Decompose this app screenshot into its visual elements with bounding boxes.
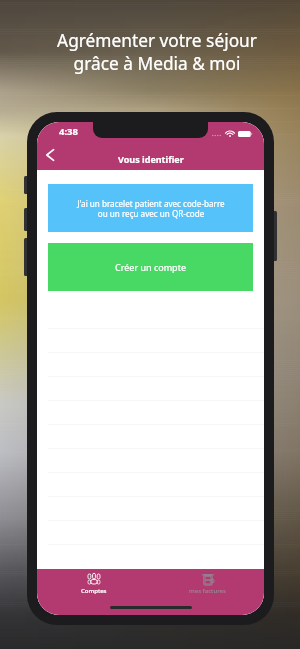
staticText: Vous identifier bbox=[118, 153, 184, 165]
button[interactable]: J'ai un bracelet patient avec code-barre… bbox=[48, 184, 253, 232]
button[interactable]: mes factures bbox=[150, 569, 264, 599]
staticText: Comptes bbox=[81, 587, 107, 595]
button[interactable]: Retour bbox=[37, 139, 61, 170]
staticText: J'ai un bracelet patient avec code-barre… bbox=[77, 198, 225, 219]
button[interactable]: Comptes bbox=[37, 569, 150, 599]
button[interactable]: Créer un compte bbox=[48, 243, 253, 291]
staticText: mes factures bbox=[189, 587, 226, 595]
staticText: 4:38 bbox=[59, 125, 78, 138]
staticText: Agrémenter votre séjour grâce à Media & … bbox=[57, 29, 257, 75]
staticText: Créer un compte bbox=[115, 261, 186, 273]
